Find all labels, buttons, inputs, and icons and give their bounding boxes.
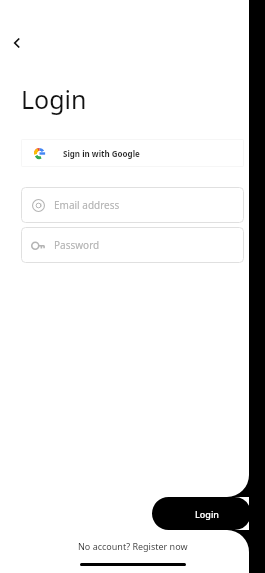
staticText: Login [21,82,87,116]
button[interactable]: Password [21,227,244,263]
button[interactable]: Back [4,30,30,56]
button[interactable]: No account? Register now [68,538,198,554]
staticText: No account? Register now [78,540,188,552]
staticText: Login [195,508,219,520]
button[interactable]: Sign in with Google [21,139,244,167]
button[interactable]: Login [152,497,251,530]
button[interactable]: Email address [21,187,244,223]
staticText: Sign in with Google [63,148,140,159]
staticText: Email address [54,198,120,212]
staticText: Password [54,238,100,252]
